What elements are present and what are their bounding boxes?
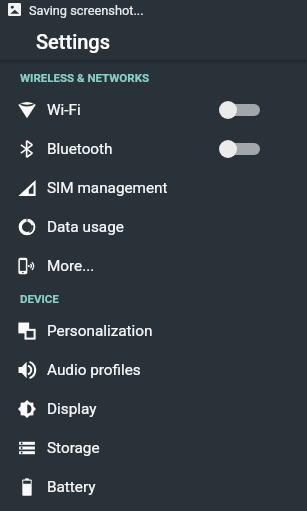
other: Screenshot: [8, 3, 21, 16]
button[interactable]: Wi-Fi: [0, 90, 307, 129]
staticText: Settings: [36, 30, 111, 53]
button[interactable]: Bluetooth: [0, 129, 307, 168]
button[interactable]: Toggle off: [219, 101, 260, 119]
button[interactable]: Storage: [0, 428, 307, 467]
staticText: Storage: [47, 439, 100, 457]
button[interactable]: Battery: [0, 467, 307, 506]
staticText: SIM management: [47, 179, 168, 197]
button[interactable]: Display: [0, 389, 307, 428]
button[interactable]: More...: [0, 246, 307, 285]
staticText: Wi-Fi: [47, 101, 81, 119]
staticText: DEVICE: [20, 292, 59, 305]
button[interactable]: Audio profiles: [0, 350, 307, 389]
button[interactable]: Data usage: [0, 207, 307, 246]
staticText: WIRELESS & NETWORKS: [20, 71, 150, 84]
staticText: Personalization: [47, 322, 153, 340]
button[interactable]: SIM management: [0, 168, 307, 207]
staticText: Battery: [47, 478, 96, 496]
button[interactable]: Toggle off: [219, 140, 260, 158]
staticText: Audio profiles: [47, 361, 141, 379]
staticText: Bluetooth: [47, 140, 113, 158]
staticText: Saving screenshot...: [29, 3, 144, 18]
staticText: More...: [47, 257, 95, 275]
staticText: Display: [47, 400, 97, 418]
button[interactable]: Personalization: [0, 311, 307, 350]
staticText: Data usage: [47, 218, 124, 236]
